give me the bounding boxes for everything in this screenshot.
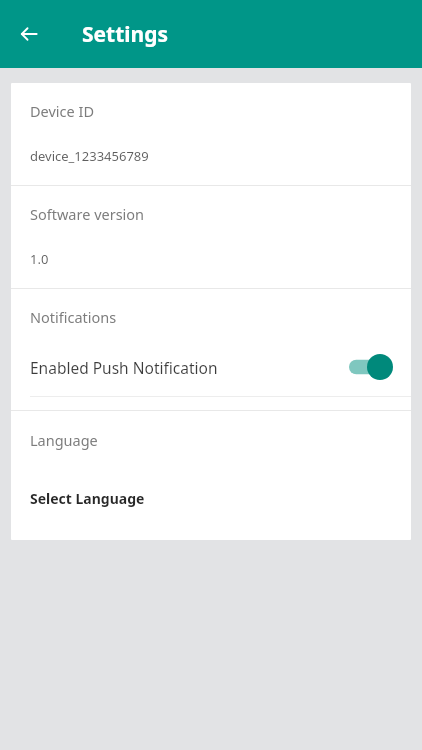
staticText: Language: [30, 430, 98, 450]
staticText: Select Language: [30, 489, 145, 508]
button[interactable]: Language: [11, 411, 411, 540]
button[interactable]: Enabled Push Notification: [11, 350, 411, 384]
staticText: Software version: [30, 204, 145, 224]
staticText: 1.0: [30, 250, 49, 268]
staticText: Enabled Push Notification: [30, 357, 349, 378]
staticText: Settings: [82, 20, 169, 49]
button[interactable]: Device ID: [11, 83, 411, 185]
staticText: Device ID: [30, 101, 94, 121]
button[interactable]: Back: [10, 15, 48, 53]
button[interactable]: Software version: [11, 186, 411, 288]
staticText: device_1233456789: [30, 147, 149, 165]
staticText: Notifications: [30, 307, 117, 327]
